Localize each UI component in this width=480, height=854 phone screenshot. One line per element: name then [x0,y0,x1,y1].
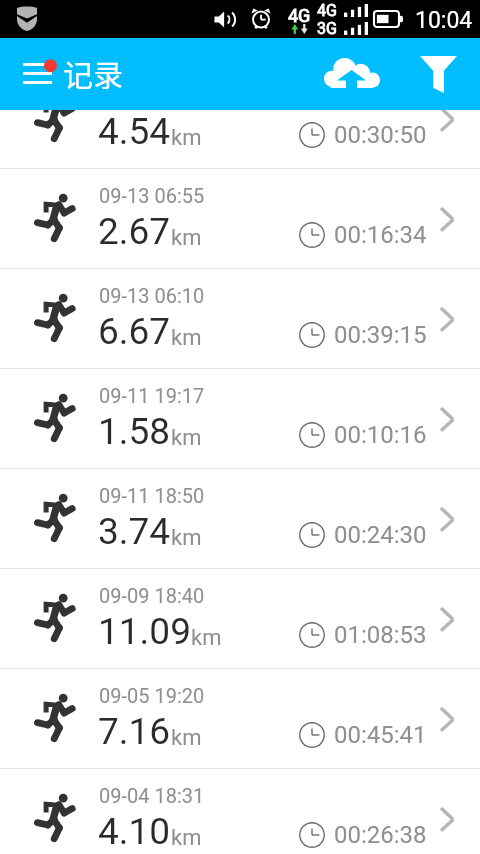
button[interactable]: 09-09 18:40 [0,569,480,669]
staticText: 09-11 19:17 [99,384,205,407]
staticText: 09-13 06:10 [99,284,205,307]
staticText: 4.54 [98,110,171,153]
staticText: 6.67 [98,310,171,353]
staticText: 3G [317,19,337,38]
staticText: 10:04 [415,7,473,34]
button[interactable]: Upload to cloud [300,38,400,110]
staticText: 00:45:41 [334,721,427,749]
staticText: km [171,125,202,151]
staticText: 2.67 [98,210,171,253]
staticText: 3.74 [98,510,171,553]
staticText: km [171,425,202,451]
staticText: 4G [288,5,311,26]
staticText: 09-11 18:50 [99,484,205,507]
button[interactable]: 记录 [0,45,137,104]
staticText: 11.09 [98,610,191,653]
staticText: 4.10 [98,810,171,853]
button[interactable]: 09-11 18:50 [0,469,480,569]
staticText: 00:24:30 [334,521,427,549]
button[interactable]: 09-04 18:31 [0,769,480,813]
staticText: km [171,825,202,851]
staticText: km [171,225,202,251]
button[interactable]: 09-13 06:10 [0,269,480,369]
staticText: 记录 [63,51,123,94]
button[interactable]: 09-15 07:10 [0,110,480,169]
staticText: 00:30:50 [334,121,427,149]
staticText: km [171,725,202,751]
staticText: 09-09 18:40 [99,584,205,607]
staticText: 09-04 18:31 [99,784,205,807]
button[interactable]: 09-05 19:20 [0,669,480,769]
button[interactable]: 09-11 19:17 [0,369,480,469]
staticText: 09-13 06:55 [99,184,205,207]
staticText: 1.58 [98,410,171,453]
staticText: 00:10:16 [334,421,427,449]
staticText: 00:16:34 [334,221,427,249]
staticText: km [171,525,202,551]
staticText: 01:08:53 [334,621,427,649]
staticText: 00:26:38 [334,821,427,849]
button[interactable]: Filter [400,38,480,110]
staticText: 00:39:15 [334,321,427,349]
staticText: 09-05 19:20 [99,684,205,707]
staticText: 4G [317,1,337,20]
staticText: km [191,625,222,651]
staticText: 7.16 [98,710,171,753]
button[interactable]: 09-13 06:55 [0,169,480,269]
staticText: km [171,325,202,351]
